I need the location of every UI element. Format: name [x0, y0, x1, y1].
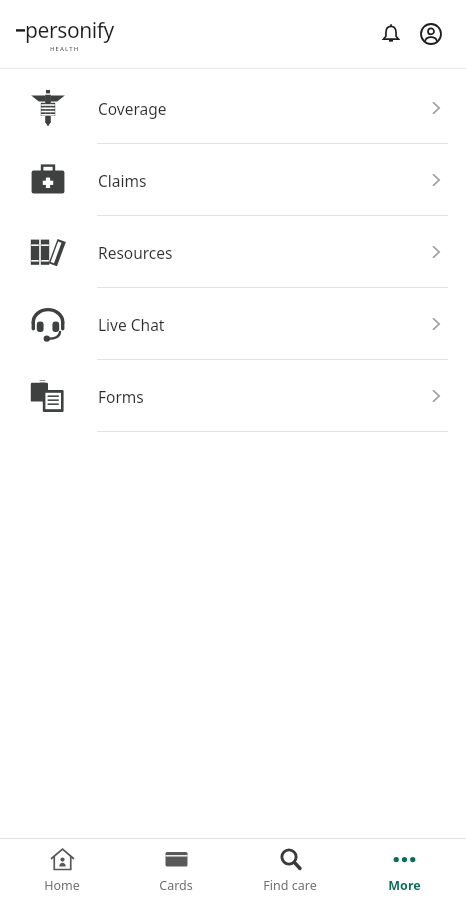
- button[interactable]: Find care: [238, 839, 342, 900]
- button[interactable]: Forms: [0, 360, 466, 432]
- button[interactable]: Account: [414, 17, 448, 51]
- button[interactable]: More: [352, 839, 456, 900]
- staticText: Home: [44, 877, 80, 894]
- button[interactable]: personify: [16, 16, 114, 53]
- staticText: personify: [25, 16, 114, 45]
- button[interactable]: Coverage: [0, 72, 466, 144]
- staticText: Cards: [159, 877, 193, 894]
- staticText: More: [388, 877, 421, 894]
- button[interactable]: Live Chat: [0, 288, 466, 360]
- staticText: Forms: [98, 386, 144, 407]
- staticText: HEALTH: [50, 45, 80, 53]
- staticText: Coverage: [98, 98, 167, 119]
- staticText: Resources: [98, 242, 173, 263]
- button[interactable]: Cards: [124, 839, 228, 900]
- button[interactable]: Notifications: [374, 17, 408, 51]
- staticText: Claims: [98, 170, 147, 191]
- button[interactable]: Home: [10, 839, 114, 900]
- button[interactable]: Resources: [0, 216, 466, 288]
- staticText: Live Chat: [98, 314, 165, 335]
- staticText: Find care: [263, 877, 317, 894]
- button[interactable]: Claims: [0, 144, 466, 216]
